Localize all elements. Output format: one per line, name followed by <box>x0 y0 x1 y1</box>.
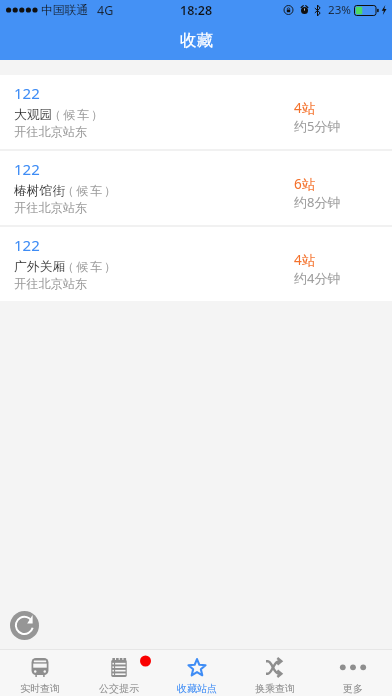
staticText: 中国联通 <box>41 3 89 18</box>
staticText: （候车） <box>61 259 117 274</box>
staticText: 更多 <box>343 682 363 695</box>
button[interactable]: 换乘查询 <box>236 650 314 696</box>
staticText: 约8分钟 <box>294 193 341 211</box>
staticText: 实时查询 <box>20 682 60 695</box>
staticText: 4G <box>97 2 114 19</box>
button[interactable]: 122 <box>0 227 392 301</box>
staticText: 收藏站点 <box>177 682 217 695</box>
staticText: 开往北京站东 <box>14 276 88 291</box>
staticText: 4站 <box>294 251 316 269</box>
staticText: 4站 <box>294 99 316 117</box>
staticText: 开往北京站东 <box>14 124 88 139</box>
staticText: （候车） <box>48 107 104 122</box>
button[interactable]: 122 <box>0 151 392 225</box>
staticText: 18:28 <box>180 2 213 19</box>
button[interactable]: 公交提示 <box>79 650 158 696</box>
staticText: 122 <box>14 159 40 179</box>
staticText: 广外关厢 <box>14 259 66 275</box>
staticText: 椿树馆街 <box>14 183 66 199</box>
staticText: （候车） <box>61 183 117 198</box>
staticText: 换乘查询 <box>255 682 295 695</box>
staticText: 约5分钟 <box>294 117 341 135</box>
staticText: 开往北京站东 <box>14 200 88 215</box>
button[interactable]: 更多 <box>314 650 392 696</box>
staticText: 122 <box>14 235 40 255</box>
staticText: 23% <box>328 2 351 18</box>
staticText: 约4分钟 <box>294 269 341 287</box>
staticText: 大观园 <box>14 107 53 123</box>
button[interactable]: 122 <box>0 75 392 149</box>
staticText: 6站 <box>294 175 316 193</box>
staticText: 公交提示 <box>99 682 139 695</box>
button[interactable]: Refresh <box>10 611 39 640</box>
staticText: 122 <box>14 83 40 103</box>
staticText: 收藏 <box>180 30 213 51</box>
button[interactable]: 收藏站点 <box>158 650 236 696</box>
button[interactable]: 实时查询 <box>0 650 79 696</box>
